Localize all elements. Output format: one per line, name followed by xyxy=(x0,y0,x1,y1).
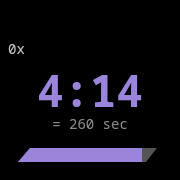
staticText: = 260 sec xyxy=(52,114,128,133)
staticText: 0x xyxy=(8,39,25,58)
staticText: 4:14 xyxy=(37,60,143,120)
button[interactable]: 4:14 xyxy=(0,60,180,180)
button[interactable]: 0x xyxy=(8,38,42,58)
button[interactable]: Progress xyxy=(0,0,180,180)
